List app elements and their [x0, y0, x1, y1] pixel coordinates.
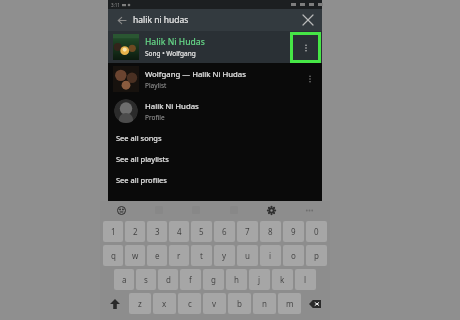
staticText: 4	[177, 226, 182, 237]
staticText: 7	[245, 226, 250, 237]
button[interactable]: 9	[283, 221, 304, 242]
staticText: j	[258, 274, 261, 285]
staticText: d	[166, 274, 171, 285]
staticText: u	[245, 250, 250, 261]
button[interactable]: 8	[260, 221, 281, 242]
button[interactable]: 6	[214, 221, 235, 242]
button[interactable]: More options for song	[290, 32, 321, 63]
button[interactable]: f	[180, 269, 201, 290]
staticText: 9	[291, 226, 296, 237]
button[interactable]: Settings	[264, 203, 278, 217]
button[interactable]: s	[136, 269, 156, 290]
staticText: w	[132, 250, 139, 261]
button[interactable]: b	[228, 293, 251, 314]
staticText: h	[234, 274, 239, 285]
staticText: See all songs	[116, 133, 162, 143]
button[interactable]: Shift	[103, 293, 127, 314]
button[interactable]: More options for playlist	[302, 71, 318, 87]
staticText: 6	[222, 226, 227, 237]
staticText: e	[155, 250, 160, 261]
staticText: p	[314, 250, 319, 261]
button[interactable]: y	[214, 245, 235, 266]
button[interactable]: Emoji	[114, 203, 128, 217]
button[interactable]: p	[306, 245, 327, 266]
button[interactable]: 7	[237, 221, 258, 242]
button[interactable]: 0	[306, 221, 327, 242]
staticText: See all playlists	[116, 154, 169, 164]
staticText: Playlist	[145, 81, 167, 90]
button[interactable]: See all songs	[108, 127, 322, 148]
button[interactable]: Clear search	[300, 12, 316, 28]
button[interactable]: Halik Ni Hudas	[108, 95, 322, 127]
staticText: See all profiles	[116, 175, 167, 185]
button[interactable]: Halik Ni Hudas	[108, 31, 322, 63]
staticText: g	[211, 274, 216, 285]
button[interactable]: v	[203, 293, 226, 314]
button[interactable]: n	[253, 293, 276, 314]
staticText: v	[212, 298, 217, 309]
button[interactable]: 3	[147, 221, 167, 242]
staticText: z	[138, 298, 142, 309]
staticText: i	[269, 250, 272, 261]
button[interactable]: j	[249, 269, 270, 290]
staticText: r	[177, 250, 181, 261]
button[interactable]: z	[129, 293, 151, 314]
button[interactable]: Back	[114, 13, 128, 27]
staticText: b	[237, 298, 242, 309]
button[interactable]: 2	[125, 221, 145, 242]
button[interactable]: t	[191, 245, 212, 266]
staticText: 2	[133, 226, 138, 237]
button[interactable]: Backspace	[303, 293, 327, 314]
staticText: m	[286, 298, 294, 309]
staticText: 3	[155, 226, 160, 237]
button[interactable]: w	[125, 245, 145, 266]
staticText: x	[162, 298, 167, 309]
button[interactable]: 5	[191, 221, 212, 242]
button[interactable]: See all playlists	[108, 148, 322, 169]
button[interactable]: 1	[103, 221, 123, 242]
button[interactable]: a	[114, 269, 134, 290]
staticText: q	[111, 250, 116, 261]
staticText: l	[304, 274, 307, 285]
staticText: halik ni hudas	[133, 14, 189, 26]
button[interactable]: x	[153, 293, 176, 314]
staticText: y	[222, 250, 227, 261]
staticText: 5	[199, 226, 204, 237]
button[interactable]: u	[237, 245, 258, 266]
button[interactable]: h	[226, 269, 247, 290]
staticText: 1	[111, 226, 116, 237]
staticText: t	[200, 250, 203, 261]
button[interactable]: d	[158, 269, 178, 290]
button[interactable]: o	[283, 245, 304, 266]
button[interactable]: g	[203, 269, 224, 290]
button[interactable]: c	[178, 293, 201, 314]
button[interactable]: e	[147, 245, 167, 266]
staticText: Halik Ni Hudas	[145, 36, 205, 48]
staticText: 0	[314, 226, 319, 237]
button[interactable]: See all profiles	[108, 169, 322, 190]
staticText: 3:11	[111, 2, 120, 8]
button[interactable]: i	[260, 245, 281, 266]
staticText: Wolfgang — Halik Ni Hudas	[145, 69, 246, 80]
staticText: Song • Wolfgang	[145, 49, 196, 58]
button[interactable]: k	[272, 269, 293, 290]
staticText: Profile	[145, 113, 165, 122]
button[interactable]: l	[295, 269, 316, 290]
button[interactable]: More	[302, 203, 316, 217]
staticText: k	[280, 274, 285, 285]
button[interactable]: r	[169, 245, 189, 266]
button[interactable]: 4	[169, 221, 189, 242]
staticText: n	[262, 298, 267, 309]
staticText: f	[189, 274, 192, 285]
staticText: c	[188, 298, 192, 309]
button[interactable]: m	[278, 293, 301, 314]
staticText: Halik Ni Hudas	[145, 101, 199, 112]
button[interactable]: Wolfgang — Halik Ni Hudas	[108, 63, 322, 95]
staticText: a	[122, 274, 127, 285]
staticText: o	[291, 250, 296, 261]
button[interactable]: q	[103, 245, 123, 266]
staticText: s	[144, 274, 148, 285]
